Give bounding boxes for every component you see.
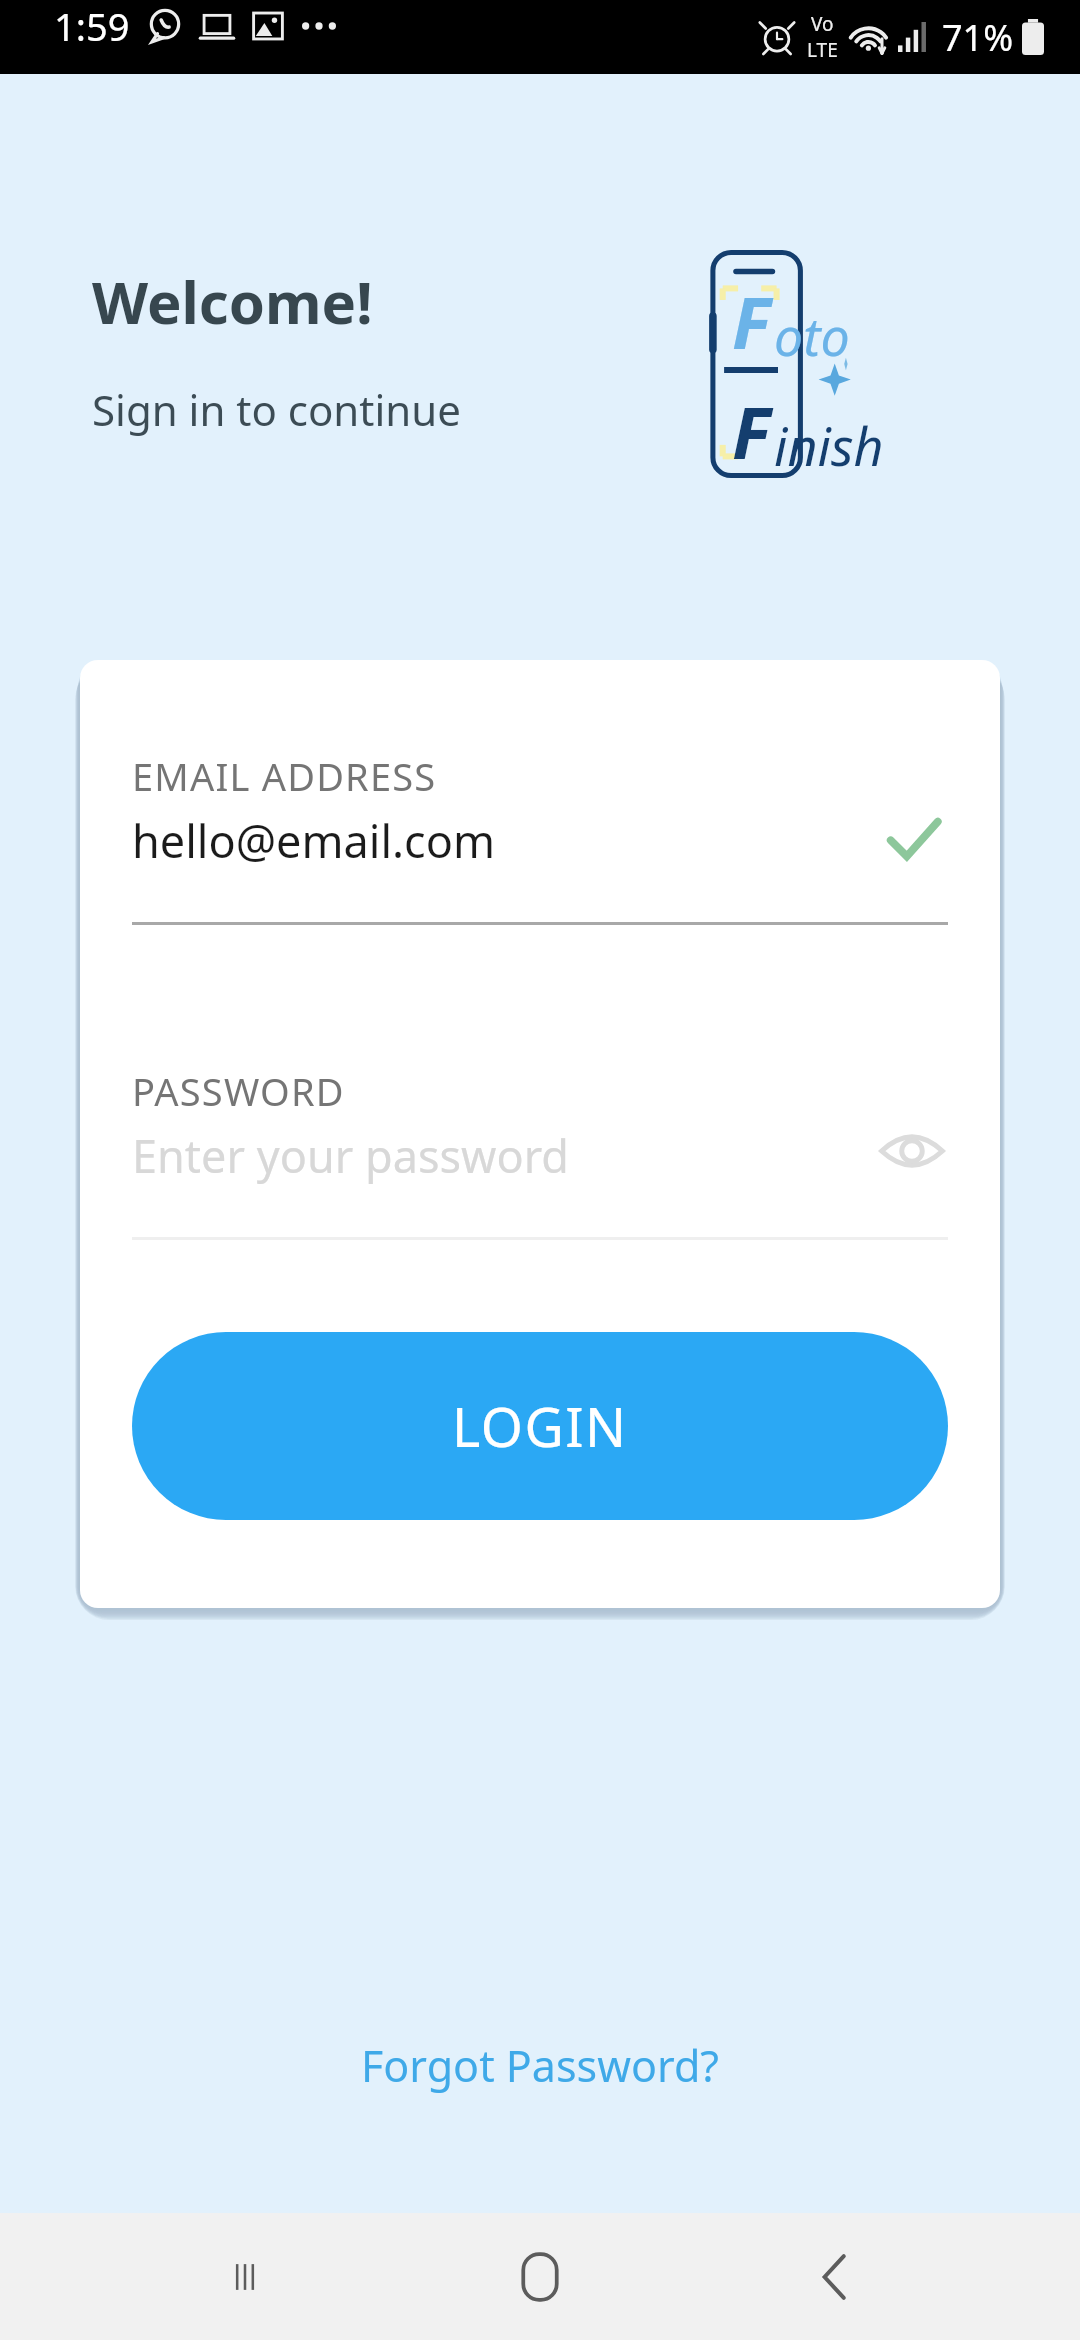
staticText: Forgot Password? xyxy=(361,2036,719,2095)
staticText: LTE xyxy=(807,37,838,63)
staticText: Enter your password xyxy=(132,1125,569,1186)
staticText: Sign in to continue xyxy=(92,381,461,438)
button[interactable]: Forgot Password? xyxy=(0,2022,1080,2108)
staticText: Vo xyxy=(811,11,834,37)
staticText: Welcome! xyxy=(92,262,373,341)
button[interactable]: PASSWORD xyxy=(132,1065,948,1265)
staticText: LOGIN xyxy=(452,1389,628,1463)
staticText: PASSWORD xyxy=(132,1065,345,1117)
button[interactable]: Home xyxy=(475,2213,605,2340)
button[interactable]: Recent apps xyxy=(180,2213,310,2340)
other: Email valid xyxy=(882,808,944,870)
staticText: F xyxy=(732,382,771,480)
staticText: hello@email.com xyxy=(132,810,495,871)
staticText: oto xyxy=(774,300,850,371)
staticText: 1:59 xyxy=(54,0,130,52)
button[interactable]: LOGIN xyxy=(132,1332,948,1520)
staticText: 71% xyxy=(942,13,1014,62)
button[interactable]: Show password xyxy=(874,1113,950,1189)
button[interactable]: EMAIL ADDRESS xyxy=(132,750,948,960)
staticText: inish xyxy=(774,410,884,481)
staticText: EMAIL ADDRESS xyxy=(132,750,437,802)
staticText: F xyxy=(732,272,771,370)
button[interactable]: Back xyxy=(770,2213,900,2340)
